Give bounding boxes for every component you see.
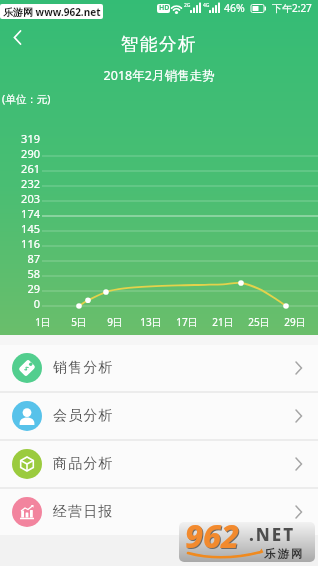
- staticText: 2018年2月销售走势: [0, 67, 318, 84]
- button[interactable]: 销售分析: [0, 345, 318, 391]
- staticText: 319: [0, 131, 40, 146]
- staticText: 会员分析: [53, 407, 114, 425]
- staticText: 1日: [28, 315, 58, 329]
- staticText: 经营日报: [53, 503, 114, 521]
- staticText: 13日: [136, 315, 166, 329]
- staticText: 174: [0, 206, 40, 221]
- staticText: 232: [0, 176, 40, 191]
- staticText: 0: [0, 296, 40, 311]
- staticText: 智能分析: [0, 33, 318, 55]
- staticText: 21日: [208, 315, 238, 329]
- staticText: (单位：元): [2, 92, 51, 106]
- staticText: 9日: [100, 315, 130, 329]
- staticText: 116: [0, 236, 40, 251]
- button[interactable]: 商品分析: [0, 441, 318, 487]
- staticText: 下午2:27: [272, 1, 312, 15]
- staticText: 乐游网 www.962.net: [3, 5, 101, 19]
- staticText: 29日: [280, 315, 310, 329]
- staticText: 261: [0, 161, 40, 176]
- button[interactable]: 会员分析: [0, 393, 318, 439]
- staticText: 25日: [244, 315, 274, 329]
- button[interactable]: [2, 24, 32, 51]
- staticText: 962: [185, 522, 240, 554]
- staticText: 203: [0, 191, 40, 206]
- button[interactable]: 经营日报: [0, 489, 318, 535]
- staticText: 145: [0, 221, 40, 236]
- staticText: 58: [0, 266, 40, 281]
- staticText: HD: [159, 3, 170, 13]
- staticText: 2G: [184, 2, 191, 9]
- staticText: 87: [0, 251, 40, 266]
- staticText: 商品分析: [53, 455, 114, 473]
- staticText: 销售分析: [53, 359, 114, 377]
- staticText: 4G: [203, 2, 210, 9]
- staticText: 962: [186, 522, 241, 555]
- staticText: 17日: [172, 315, 202, 329]
- staticText: 29: [0, 281, 40, 296]
- staticText: 5日: [64, 315, 94, 329]
- staticText: 46%: [224, 1, 245, 15]
- staticText: 乐游网: [264, 547, 305, 561]
- staticText: 290: [0, 146, 40, 161]
- staticText: .NET: [249, 523, 296, 546]
